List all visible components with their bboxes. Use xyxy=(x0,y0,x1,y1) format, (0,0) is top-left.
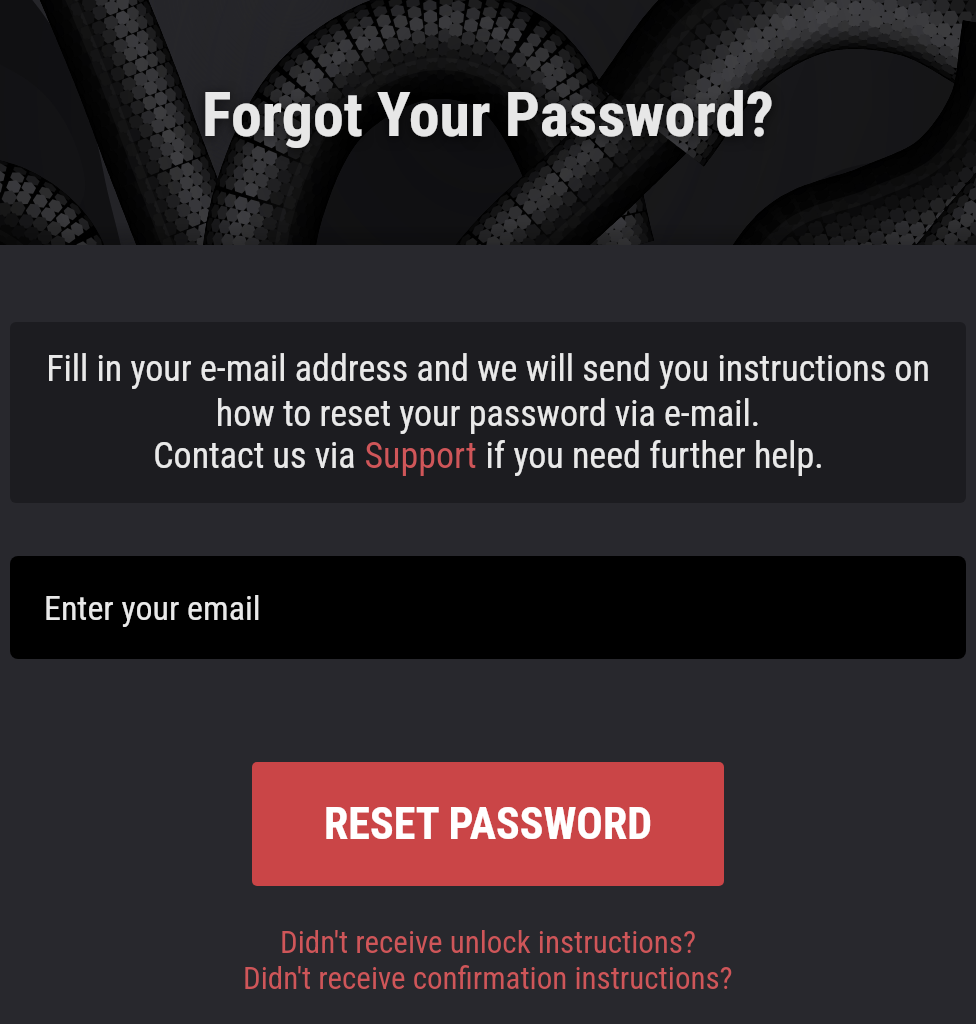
staticText: Fill in your e-mail address and we will … xyxy=(10,348,966,435)
button[interactable]: Support xyxy=(364,435,477,477)
staticText: Enter your email xyxy=(44,588,261,628)
staticText: Didn't receive confirmation instructions… xyxy=(243,960,733,996)
staticText: Contact us via xyxy=(153,435,364,477)
staticText: Forgot Your Password? xyxy=(202,78,774,151)
button[interactable]: Didn't receive unlock instructions? xyxy=(280,924,697,960)
staticText: Support xyxy=(364,435,477,477)
button[interactable]: RESET PASSWORD xyxy=(252,762,724,886)
button[interactable]: Enter your email xyxy=(10,556,966,659)
button[interactable]: Didn't receive confirmation instructions… xyxy=(243,960,733,996)
staticText: if you need further help. xyxy=(477,435,824,477)
staticText: Didn't receive unlock instructions? xyxy=(280,924,697,960)
staticText: RESET PASSWORD xyxy=(324,798,653,850)
